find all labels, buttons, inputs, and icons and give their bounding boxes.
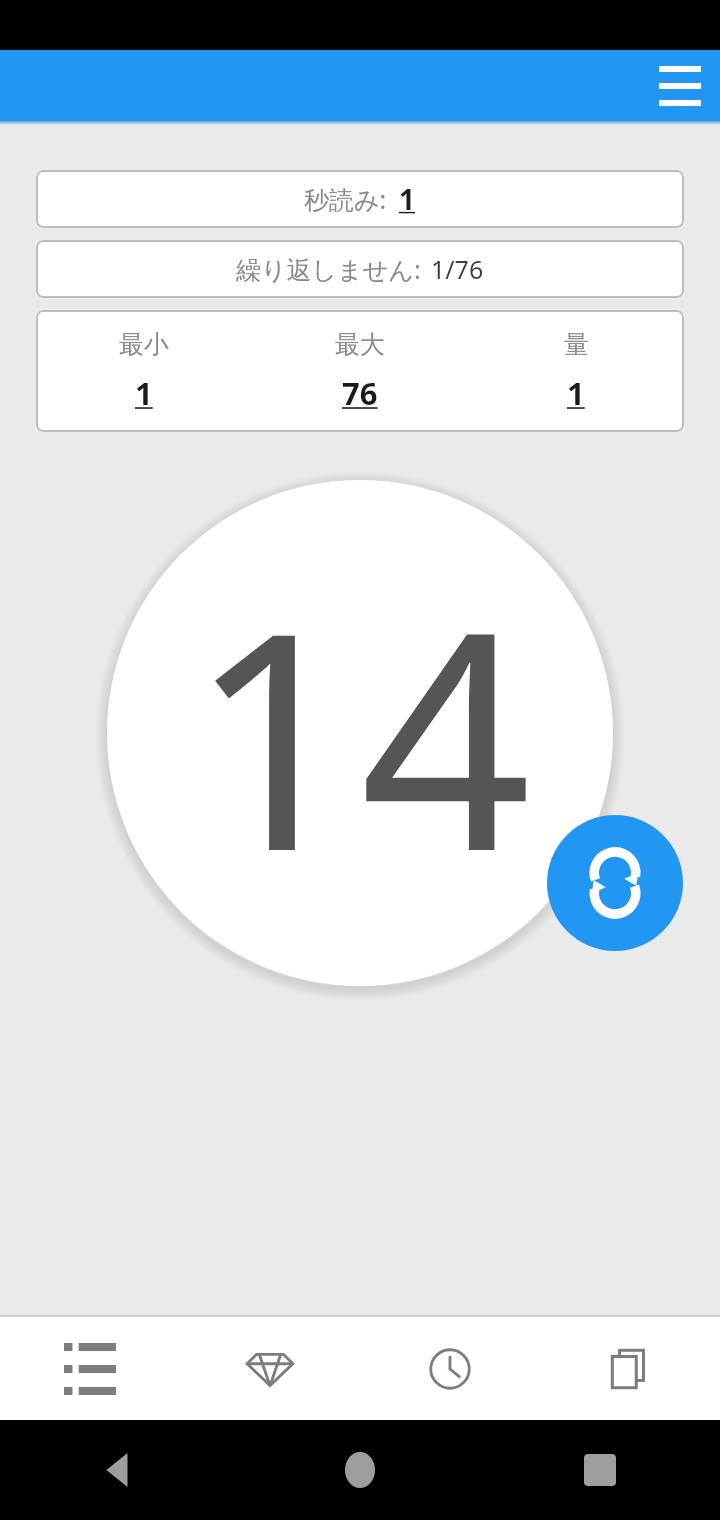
button[interactable]: Menu	[652, 58, 708, 114]
button[interactable]: Copy	[540, 1317, 720, 1420]
staticText: 最小	[119, 329, 169, 360]
button[interactable]: 秒読み:	[36, 170, 684, 228]
button[interactable]: Random number 14	[105, 478, 615, 988]
button[interactable]: 最大	[252, 310, 468, 432]
button[interactable]: 最小	[36, 310, 684, 432]
button[interactable]: 繰り返しません:	[36, 240, 684, 298]
button[interactable]: History	[360, 1317, 540, 1420]
staticText: 繰り返しません:	[236, 252, 421, 286]
staticText: 最大	[335, 329, 385, 360]
staticText: 1/76	[431, 252, 484, 286]
staticText: 量	[564, 329, 589, 360]
staticText: 14	[188, 529, 532, 938]
staticText: 1	[135, 372, 153, 414]
staticText: 1	[567, 372, 585, 414]
staticText: 76	[342, 372, 378, 414]
button[interactable]: Gems	[180, 1317, 360, 1420]
staticText: 秒読み:	[304, 182, 387, 216]
staticText: 1	[399, 180, 416, 218]
button[interactable]: Refresh	[547, 815, 683, 951]
button[interactable]: List	[0, 1317, 180, 1420]
button[interactable]: 量	[468, 310, 684, 432]
button[interactable]: 最小	[36, 310, 252, 432]
